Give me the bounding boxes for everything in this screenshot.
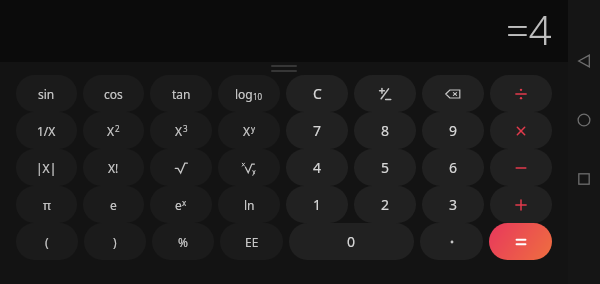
button[interactable]: 1/X [16,112,77,149]
staticText: cos [104,86,123,102]
button[interactable]: Plus minus [354,75,416,112]
staticText: 3 [183,123,188,134]
button[interactable]: 8 [354,112,416,149]
staticText: 4 [313,158,322,177]
staticText: sin [38,86,55,102]
staticText: log [235,86,253,102]
button[interactable]: |X| [16,149,77,186]
button[interactable]: Divide [490,75,552,112]
button[interactable]: 5 [354,149,416,186]
staticText: 2 [381,195,390,214]
staticText: 7 [313,121,322,140]
staticText: 2 [115,123,120,134]
button[interactable]: X [150,112,212,149]
staticText: 9 [449,121,458,140]
button[interactable]: X root y [218,149,280,186]
staticText: 1 [313,195,322,214]
button[interactable]: ) [84,223,146,260]
button[interactable]: Back [569,46,599,76]
button[interactable]: % [152,223,214,260]
button[interactable]: π [16,186,77,223]
button[interactable]: 3 [422,186,484,223]
staticText: X! [108,160,119,176]
staticText: X [107,123,115,139]
button[interactable]: Home [569,105,599,135]
button[interactable]: Subtract [490,149,552,186]
staticText: C [313,84,322,103]
button[interactable]: Square root [150,149,212,186]
button[interactable]: 2 [354,186,416,223]
button[interactable]: C [286,75,348,112]
button[interactable]: Recents [569,164,599,194]
button[interactable]: Decimal point [420,223,483,260]
button[interactable]: 7 [286,112,348,149]
button[interactable]: X [83,112,144,149]
staticText: 1/X [37,123,56,139]
button[interactable]: e [83,186,144,223]
button[interactable]: EE [220,223,283,260]
button[interactable]: e [150,186,212,223]
staticText: |X| [36,160,57,176]
staticText: π [43,197,51,213]
staticText: 10 [253,91,263,102]
button[interactable]: Add [490,186,552,223]
staticText: 5 [381,158,390,177]
staticText: =4 [506,2,552,56]
button[interactable]: ( [16,223,78,260]
button[interactable]: log [218,75,280,112]
staticText: X [243,123,251,139]
staticText: 8 [381,121,390,140]
button[interactable]: 1 [286,186,348,223]
button[interactable]: ln [218,186,280,223]
staticText: ln [244,197,255,213]
staticText: % [178,234,188,250]
staticText: e [175,197,182,213]
staticText: EE [245,234,259,250]
staticText: y [251,123,256,134]
staticText: X [175,123,183,139]
button[interactable]: 4 [286,149,348,186]
button[interactable]: Equals [489,223,552,260]
button[interactable]: Backspace [422,75,484,112]
button[interactable]: 0 [289,223,414,260]
staticText: x [182,197,187,208]
button[interactable]: 6 [422,149,484,186]
button[interactable]: X! [83,149,144,186]
button[interactable]: Multiply [490,112,552,149]
staticText: 3 [449,195,458,214]
staticText: 6 [449,158,458,177]
staticText: 0 [347,232,356,251]
staticText: ( [45,234,49,250]
button[interactable]: 9 [422,112,484,149]
staticText: ) [113,234,117,250]
button[interactable]: tan [150,75,212,112]
button[interactable]: sin [16,75,77,112]
button[interactable]: cos [83,75,144,112]
button[interactable]: X [218,112,280,149]
staticText: e [110,197,117,213]
staticText: tan [172,86,191,102]
